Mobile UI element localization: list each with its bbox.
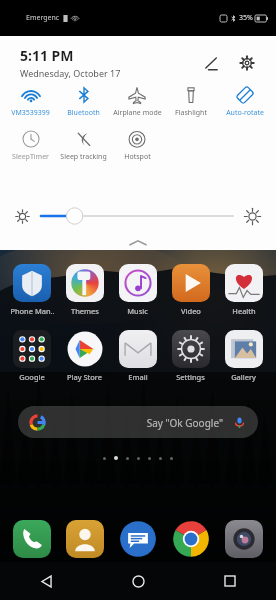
staticText: Auto-rotate (226, 108, 264, 118)
staticText: Themes (71, 306, 99, 316)
staticText: Health (232, 306, 256, 316)
button[interactable]: Back (0, 562, 92, 600)
staticText: Video (181, 306, 201, 316)
button[interactable]: Hotspot (110, 127, 164, 165)
button[interactable]: Settings (164, 328, 217, 384)
button[interactable]: Airplane mode (110, 83, 164, 121)
button[interactable]: Messages (111, 520, 164, 558)
staticText: Email (128, 372, 148, 382)
staticText: Play Store (67, 372, 102, 382)
button[interactable]: Edit quick settings (196, 48, 226, 78)
staticText: 35% (239, 13, 253, 23)
staticText: Settings (176, 372, 205, 382)
button[interactable]: Say "Ok Google" (18, 406, 258, 438)
button[interactable]: Contacts (58, 520, 111, 558)
button[interactable]: Recents (184, 562, 276, 600)
staticText: Say "Ok Google" (45, 416, 223, 430)
staticText: Flashlight (175, 108, 207, 118)
button[interactable]: Camera (217, 520, 270, 558)
button[interactable]: Chrome (164, 520, 217, 558)
staticText: Music (127, 306, 148, 316)
button[interactable]: SleepTimer (4, 127, 57, 165)
staticText: Gallery (231, 372, 256, 382)
button[interactable]: Home (92, 562, 184, 600)
button[interactable]: Video (164, 262, 217, 318)
button[interactable]: Collapse panel (0, 236, 276, 250)
staticText: 5:11 PM (20, 46, 74, 65)
staticText: VM3539399 (11, 108, 50, 118)
button[interactable]: Phone (6, 520, 58, 558)
button[interactable]: Sleep tracking (57, 127, 110, 165)
button[interactable]: Auto-rotate (218, 83, 272, 121)
staticText: Sleep tracking (60, 152, 107, 162)
button[interactable]: Flashlight (164, 83, 218, 121)
staticText: SleepTimer (12, 152, 49, 162)
button[interactable]: Email (111, 328, 164, 384)
button[interactable]: Play Store (58, 328, 111, 384)
staticText: Google (19, 372, 45, 382)
button[interactable]: Google (6, 328, 58, 384)
staticText: Hotspot (124, 152, 151, 162)
button[interactable]: Settings (232, 48, 262, 78)
button[interactable]: Themes (58, 262, 111, 318)
button[interactable]: Health (217, 262, 270, 318)
button[interactable]: Phone Man.. (6, 262, 58, 318)
button[interactable]: Music (111, 262, 164, 318)
staticText: Bluetooth (67, 108, 100, 118)
staticText: Emergenc (26, 13, 60, 23)
staticText: Airplane mode (113, 108, 162, 118)
staticText: Wednesday, October 17 (20, 67, 121, 79)
button[interactable]: Gallery (217, 328, 270, 384)
button[interactable]: VM3539399 (4, 83, 57, 121)
button[interactable]: Bluetooth (57, 83, 110, 121)
staticText: Phone Man.. (10, 306, 55, 316)
